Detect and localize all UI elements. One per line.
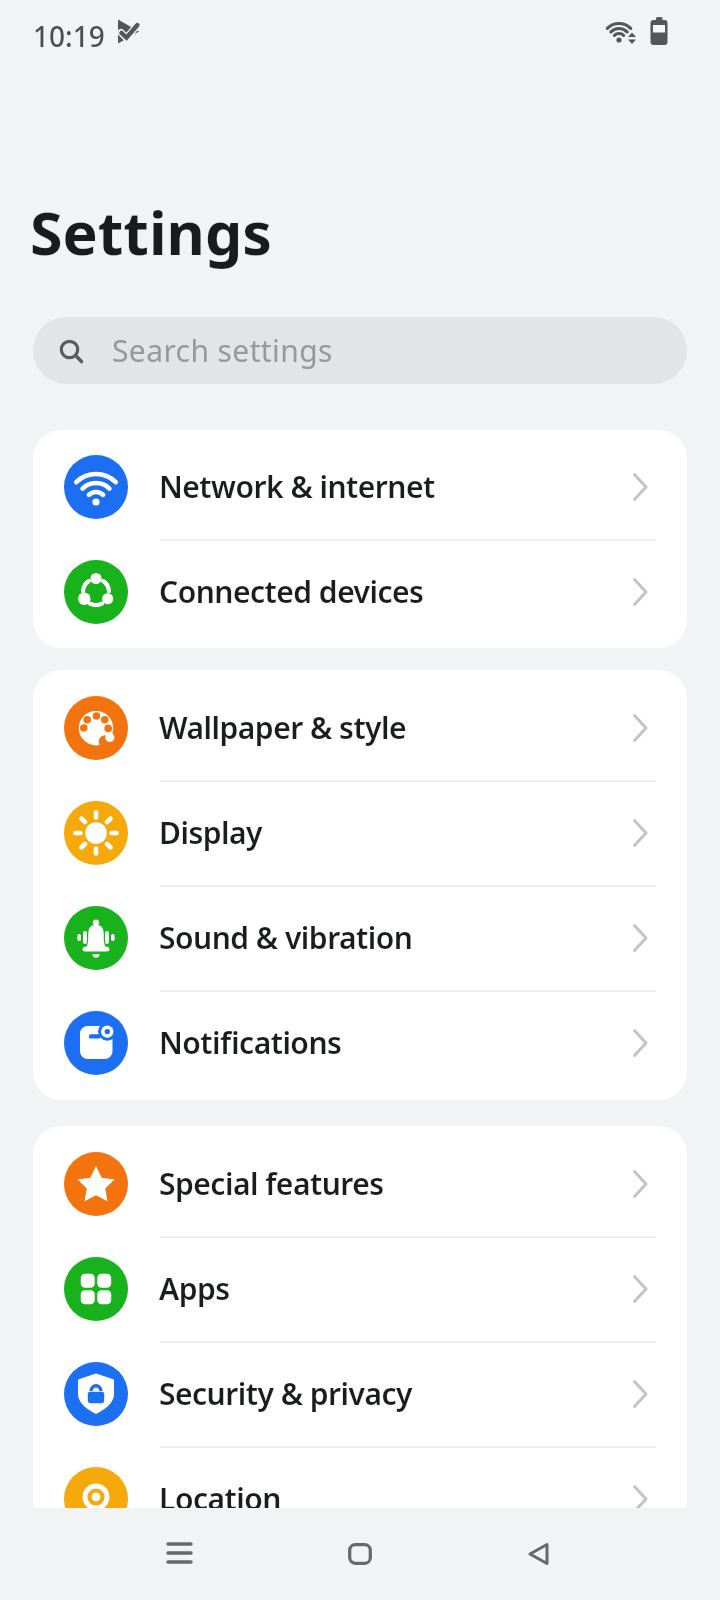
staticText: Notifications bbox=[159, 1022, 342, 1063]
button[interactable] bbox=[516, 1531, 562, 1577]
staticText: 10:19 bbox=[33, 17, 105, 55]
staticText: Connected devices bbox=[159, 571, 424, 612]
button[interactable]: Security & privacy bbox=[33, 1341, 687, 1446]
button[interactable]: Apps bbox=[33, 1236, 687, 1341]
button[interactable] bbox=[337, 1531, 383, 1577]
staticText: Network & internet bbox=[159, 466, 435, 507]
button[interactable]: Notifications bbox=[33, 990, 687, 1095]
staticText: Security & privacy bbox=[159, 1373, 413, 1414]
button[interactable]: Network & internet bbox=[33, 434, 687, 539]
button[interactable]: Connected devices bbox=[33, 539, 687, 644]
button[interactable]: Special features bbox=[33, 1131, 687, 1236]
staticText: Wallpaper & style bbox=[159, 707, 407, 748]
button[interactable]: Display bbox=[33, 780, 687, 885]
button[interactable]: Wallpaper & style bbox=[33, 675, 687, 780]
button[interactable]: Search settings bbox=[33, 317, 687, 384]
button[interactable] bbox=[157, 1531, 203, 1577]
staticText: Special features bbox=[159, 1163, 384, 1204]
staticText: Sound & vibration bbox=[159, 917, 413, 958]
button[interactable]: Location bbox=[33, 1446, 687, 1551]
staticText: Location bbox=[159, 1478, 281, 1519]
staticText: Apps bbox=[159, 1268, 230, 1309]
staticText: Search settings bbox=[112, 330, 333, 371]
button[interactable]: Sound & vibration bbox=[33, 885, 687, 990]
staticText: Display bbox=[159, 812, 262, 853]
staticText: Settings bbox=[30, 192, 272, 272]
